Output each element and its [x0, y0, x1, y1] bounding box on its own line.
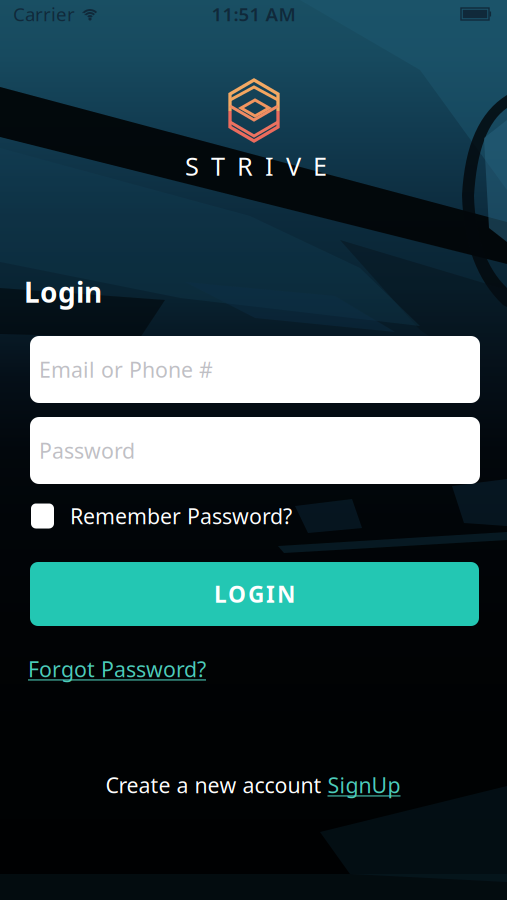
staticText: 11:51 AM — [211, 2, 295, 26]
button[interactable]: Remember Password? — [0, 501, 507, 531]
button[interactable]: LOGIN — [30, 562, 479, 626]
staticText: STRIVE — [185, 149, 327, 183]
button[interactable]: Password — [30, 417, 480, 484]
staticText: LOGIN — [214, 579, 295, 609]
staticText: SignUp — [327, 771, 400, 799]
button[interactable]: Forgot Password? — [28, 655, 206, 683]
staticText: Password — [39, 436, 135, 465]
staticText: Email or Phone # — [39, 355, 213, 384]
staticText: Forgot Password? — [28, 655, 206, 683]
staticText: Create a new account — [105, 771, 321, 799]
staticText: Carrier — [13, 2, 75, 26]
button[interactable]: Email or Phone # — [30, 336, 480, 403]
staticText: Login — [24, 273, 102, 311]
staticText: Remember Password? — [70, 502, 292, 530]
button[interactable]: SignUp — [327, 771, 400, 799]
